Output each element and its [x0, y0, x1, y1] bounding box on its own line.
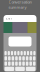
staticText: Conversation summary	[8, 0, 31, 10]
staticText: 9:41	[5, 17, 12, 20]
